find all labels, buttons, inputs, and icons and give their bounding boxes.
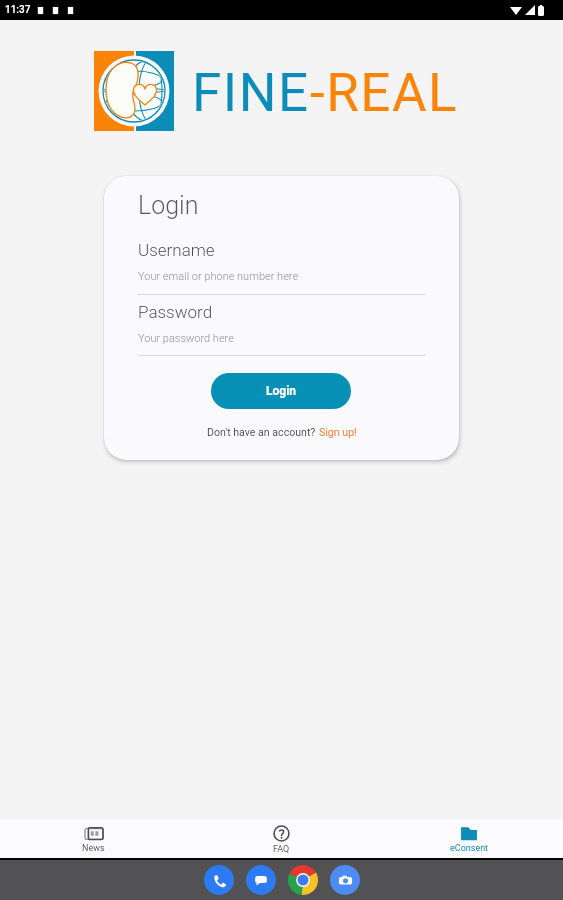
staticText: eConsent	[450, 843, 489, 854]
staticText: Don't have an account?	[207, 426, 319, 438]
button[interactable]: Login	[211, 373, 351, 409]
staticText: FAQ	[273, 844, 290, 855]
button[interactable]: Phone	[204, 865, 234, 895]
button[interactable]: eConsent	[375, 822, 563, 854]
button[interactable]: Sign up!	[319, 426, 357, 438]
button[interactable]: Messages	[246, 865, 276, 895]
staticText: -REAL	[310, 62, 459, 124]
staticText: Login	[266, 384, 297, 398]
staticText: Your email or phone number here	[138, 270, 299, 283]
staticText: FINE	[192, 62, 310, 124]
staticText: Username	[138, 240, 215, 260]
button[interactable]: FAQ	[187, 821, 375, 855]
staticText: 11:37	[5, 4, 31, 16]
button[interactable]: Camera	[330, 865, 360, 895]
staticText: Your password here	[138, 332, 234, 345]
staticText: News	[82, 843, 105, 854]
staticText: Login	[138, 191, 199, 220]
staticText: Password	[138, 302, 213, 322]
staticText: Sign up!	[319, 426, 357, 438]
button[interactable]: News	[0, 822, 187, 854]
button[interactable]: Chrome	[288, 865, 318, 895]
